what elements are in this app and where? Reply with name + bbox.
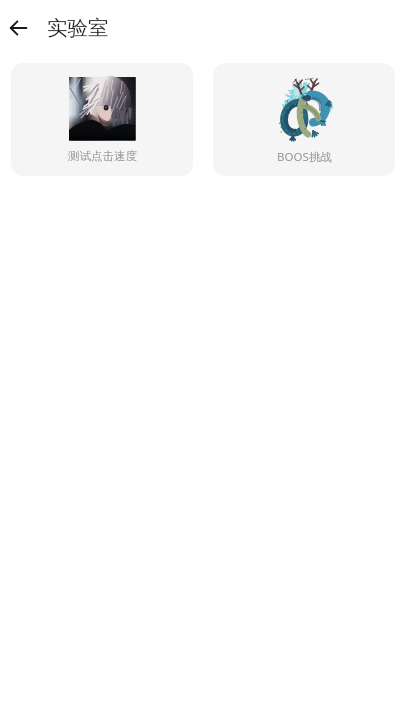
button[interactable]: Back	[5, 14, 33, 42]
staticText: 测试点击速度	[68, 149, 137, 163]
staticText: BOOS挑战	[277, 149, 332, 165]
button[interactable]: BOOS挑战	[213, 63, 395, 176]
staticText: 实验室	[47, 15, 109, 41]
button[interactable]: 测试点击速度	[11, 63, 193, 176]
